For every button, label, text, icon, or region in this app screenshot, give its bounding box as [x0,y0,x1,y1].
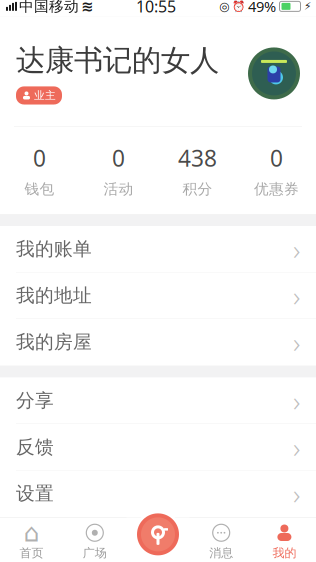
staticText: 业主 [34,89,56,102]
button[interactable]: Profile photo [248,47,300,99]
button[interactable]: 0 [237,133,316,208]
staticText: ⌂ [24,518,40,547]
button[interactable]: 0 [0,133,79,208]
button[interactable]: 消息 [190,518,253,562]
staticText: 积分 [182,180,212,198]
staticText: 0 [270,143,283,173]
staticText: 消息 [209,546,233,560]
staticText: 我的房屋 [16,331,92,354]
staticText: 49% [248,0,276,16]
staticText: 反馈 [16,436,54,459]
button[interactable]: 438 [158,133,237,208]
staticText: 我的地址 [16,284,92,307]
staticText: 0 [33,143,46,173]
button[interactable]: 我的 [253,518,316,562]
staticText: › [293,323,300,361]
staticText: 首页 [20,546,44,560]
staticText: 中国移动 [19,0,79,15]
staticText: ⏰ [232,0,245,12]
staticText: 钱包 [24,180,54,198]
button[interactable]: 分享 [0,378,316,424]
staticText: 我的账单 [16,238,92,261]
staticText: 分享 [16,389,54,412]
staticText: ≋ [81,0,93,15]
staticText: 设置 [16,482,54,505]
staticText: › [293,230,300,268]
button[interactable]: Key [134,510,182,558]
staticText: › [293,475,300,512]
staticText: › [293,428,300,466]
button[interactable]: 设置 [0,471,316,517]
staticText: › [293,382,300,419]
button[interactable]: 我的地址 [0,273,316,319]
button[interactable]: ⌂ [0,518,63,562]
button[interactable]: 广场 [63,518,126,562]
staticText: 达康书记的女人 [16,42,219,78]
staticText: ⚡︎ [304,0,311,12]
staticText: › [293,277,300,314]
staticText: 10:55 [136,0,176,17]
staticText: 广场 [83,546,107,560]
button[interactable]: 反馈 [0,424,316,471]
staticText: 优惠券 [254,180,299,198]
button[interactable]: 我的房屋 [0,319,316,366]
staticText: 活动 [103,180,133,198]
staticText: 我的 [272,546,296,560]
button[interactable]: 我的账单 [0,226,316,273]
staticText: ◎ [219,0,229,13]
button[interactable]: 0 [79,133,158,208]
staticText: 0 [112,143,125,173]
staticText: 438 [178,143,217,173]
